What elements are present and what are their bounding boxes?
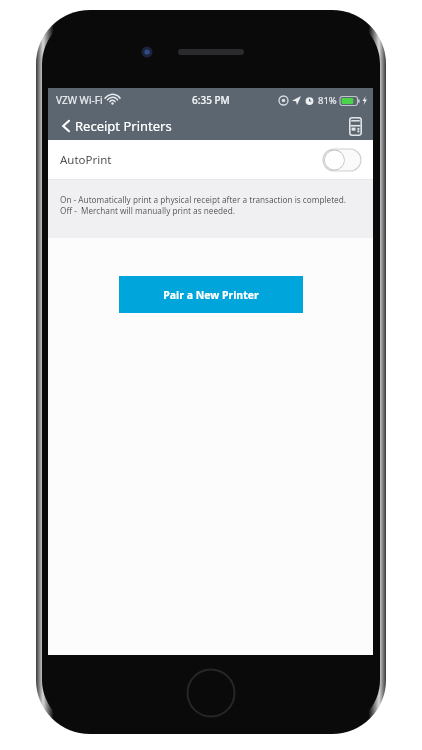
staticText: Receipt Printers — [75, 117, 172, 135]
button[interactable]: Printer status — [346, 114, 365, 139]
staticText: AutoPrint — [60, 152, 112, 168]
staticText: Pair a New Printer — [163, 288, 259, 302]
staticText: VZW Wi-Fi — [56, 93, 103, 107]
staticText: 81% — [318, 94, 337, 107]
button[interactable]: AutoPrint — [48, 140, 373, 180]
button[interactable]: Pair a New Printer — [119, 276, 303, 313]
staticText: 6:35 PM — [192, 93, 230, 107]
button[interactable]: Receipt Printers — [58, 114, 176, 138]
staticText: Off - Merchant will manually print as ne… — [60, 205, 235, 216]
staticText: On - Automatically print a physical rece… — [60, 194, 346, 205]
button[interactable]: AutoPrint toggle, off — [323, 149, 361, 171]
